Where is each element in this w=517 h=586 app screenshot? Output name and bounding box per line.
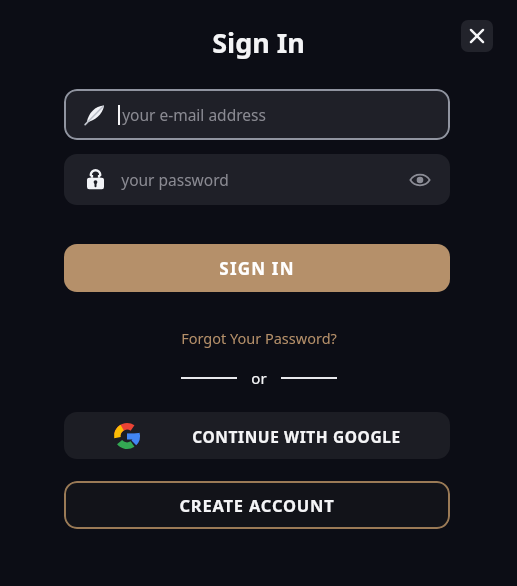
button[interactable]: your e-mail address	[64, 89, 450, 140]
staticText: Sign In	[212, 24, 305, 61]
staticText: or	[251, 368, 267, 388]
staticText: CREATE ACCOUNT	[179, 494, 335, 516]
staticText: your e-mail address	[122, 104, 266, 125]
button[interactable]: CREATE ACCOUNT	[64, 481, 450, 529]
button[interactable]: Close	[461, 20, 493, 52]
button[interactable]: Forgot Your Password?	[173, 326, 345, 350]
button[interactable]: SIGN IN	[64, 244, 450, 292]
button[interactable]: your password	[64, 154, 450, 205]
staticText: SIGN IN	[219, 257, 295, 280]
staticText: CONTINUE WITH GOOGLE	[192, 426, 401, 447]
staticText: Forgot Your Password?	[181, 328, 337, 348]
staticText: your password	[121, 169, 229, 190]
button[interactable]: CONTINUE WITH GOOGLE	[64, 412, 450, 459]
button[interactable]: Show password	[406, 166, 434, 194]
